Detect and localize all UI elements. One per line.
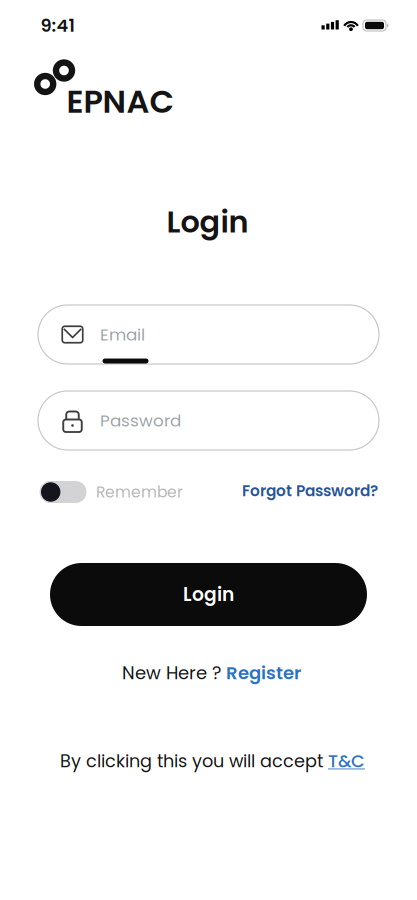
staticText: Forgot Password? — [242, 480, 378, 502]
button[interactable]: Login — [50, 563, 367, 626]
staticText: EPNAC — [66, 79, 174, 124]
staticText: Email — [100, 323, 145, 346]
staticText: By clicking this you will accept — [60, 749, 328, 773]
button[interactable]: T&C — [328, 749, 365, 773]
staticText: Remember — [96, 481, 183, 503]
staticText: Password — [100, 409, 181, 432]
button[interactable]: Password — [38, 391, 379, 450]
staticText: Login — [183, 581, 234, 607]
button[interactable]: Forgot Password? — [242, 480, 378, 502]
staticText: New Here ? — [122, 660, 226, 686]
staticText: Register — [226, 660, 301, 686]
button[interactable]: Register — [226, 660, 301, 686]
staticText: T&C — [328, 749, 365, 773]
button[interactable]: Email — [38, 305, 379, 364]
staticText: 9:41 — [40, 13, 74, 38]
button[interactable]: Remember — [39, 481, 86, 503]
staticText: Login — [166, 201, 248, 243]
